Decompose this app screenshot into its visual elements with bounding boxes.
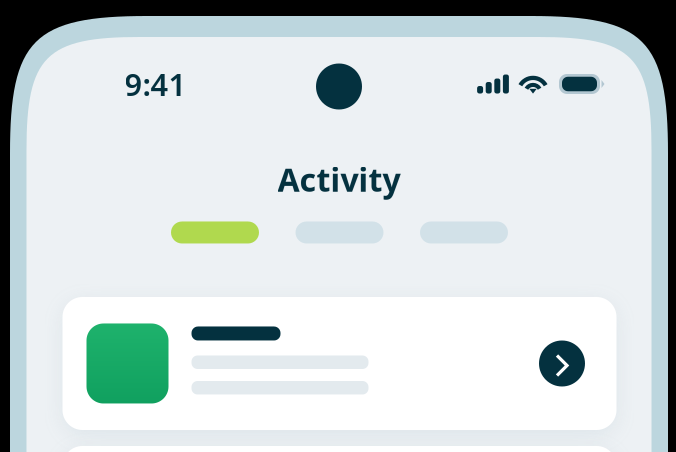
button[interactable]: Activity entry bbox=[62, 297, 616, 430]
staticText: 9:41 bbox=[124, 64, 186, 104]
button[interactable]: Today bbox=[171, 221, 259, 243]
button[interactable]: This Month bbox=[420, 221, 508, 243]
button[interactable]: Activity entry bbox=[62, 446, 616, 452]
button[interactable]: This Week bbox=[295, 221, 383, 243]
staticText: Activity bbox=[277, 158, 400, 200]
